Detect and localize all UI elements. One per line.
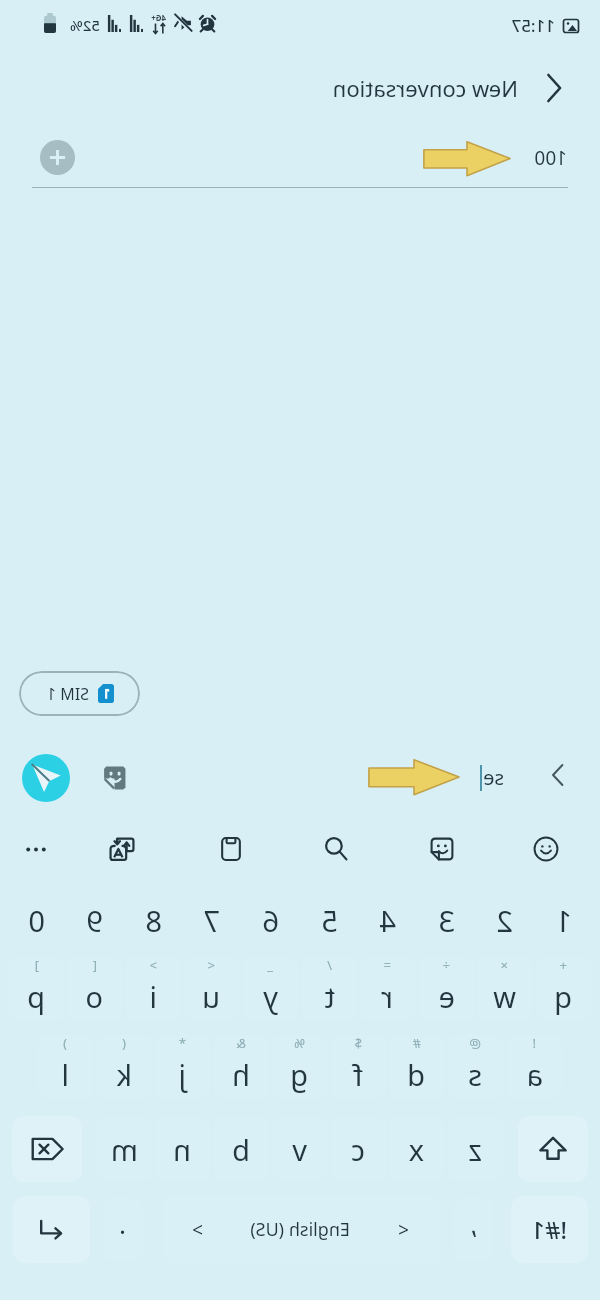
staticText: g	[290, 1055, 308, 1094]
staticText: %	[294, 1035, 305, 1052]
button[interactable]: Translate	[98, 825, 146, 873]
button[interactable]: x	[389, 1117, 444, 1181]
button[interactable]: ×	[477, 957, 532, 1021]
staticText: 1	[555, 901, 572, 940]
button[interactable]: 7	[182, 889, 241, 951]
staticText: k	[116, 1055, 132, 1094]
staticText: ,	[470, 1206, 477, 1241]
button[interactable]: v	[272, 1117, 327, 1181]
staticText: f	[353, 1055, 363, 1094]
staticText: 4	[379, 901, 396, 940]
button[interactable]: Space	[162, 1196, 439, 1263]
button[interactable]: b	[214, 1117, 269, 1181]
button[interactable]: ,	[454, 1198, 494, 1261]
staticText: q	[554, 977, 572, 1016]
staticText: o	[85, 977, 103, 1016]
button[interactable]: Search	[312, 825, 360, 873]
button[interactable]: 4	[358, 889, 417, 951]
staticText: 2	[496, 901, 513, 940]
button[interactable]: +	[536, 957, 591, 1021]
button[interactable]: More options	[12, 825, 60, 873]
button[interactable]: 9	[65, 889, 124, 951]
button[interactable]: Enter	[13, 1196, 90, 1263]
button[interactable]: 2	[475, 889, 534, 951]
staticText: English (US)	[250, 1217, 350, 1242]
staticText: !	[532, 1035, 536, 1052]
button[interactable]: (	[97, 1035, 152, 1099]
staticText: v	[292, 1130, 307, 1169]
button[interactable]: 6	[241, 889, 300, 951]
button[interactable]: Stickers	[418, 825, 466, 873]
button[interactable]: _	[243, 957, 298, 1021]
staticText: ÷	[442, 957, 450, 974]
button[interactable]: 1	[534, 889, 593, 951]
staticText: 5	[321, 901, 338, 940]
staticText: i	[149, 977, 157, 1016]
button[interactable]: *	[155, 1035, 210, 1099]
staticText: .	[119, 1206, 126, 1241]
button[interactable]: c	[331, 1117, 386, 1181]
staticText: @	[469, 1035, 481, 1052]
staticText: (	[122, 1035, 126, 1052]
button[interactable]: $	[331, 1035, 386, 1099]
button[interactable]: %	[272, 1035, 327, 1099]
staticText: x	[408, 1130, 424, 1169]
button[interactable]: Expand	[540, 756, 578, 794]
button[interactable]: SIM 1	[19, 671, 140, 716]
button[interactable]: Emoji	[522, 825, 570, 873]
button[interactable]: Clipboard	[207, 825, 255, 873]
staticText: 11:57	[511, 14, 555, 37]
button[interactable]: Shift	[518, 1116, 588, 1182]
button[interactable]: #	[389, 1035, 444, 1099]
button[interactable]: 0	[7, 889, 66, 951]
button[interactable]: &	[214, 1035, 269, 1099]
staticText: =	[383, 957, 391, 974]
staticText: 9	[86, 901, 103, 940]
staticText: <	[398, 1217, 409, 1243]
staticText: e	[438, 977, 455, 1016]
button[interactable]: [	[67, 957, 122, 1021]
button[interactable]: >	[126, 957, 181, 1021]
staticText: 8	[145, 901, 162, 940]
staticText: se	[483, 764, 504, 791]
staticText: )	[63, 1035, 67, 1052]
button[interactable]: 5	[300, 889, 359, 951]
button[interactable]: )	[38, 1035, 93, 1099]
button[interactable]: /	[302, 957, 357, 1021]
staticText: 52%	[70, 15, 100, 35]
staticText: a	[526, 1055, 543, 1094]
staticText: New conversation	[332, 73, 518, 103]
button[interactable]: 3	[417, 889, 476, 951]
staticText: y	[263, 977, 278, 1016]
button[interactable]: Backspace	[12, 1116, 82, 1182]
button[interactable]: =	[360, 957, 415, 1021]
button[interactable]: n	[155, 1117, 210, 1181]
staticText: 3	[438, 901, 455, 940]
staticText: 6	[262, 901, 279, 940]
button[interactable]: @	[448, 1035, 503, 1099]
button[interactable]: m	[97, 1117, 152, 1181]
staticText: w	[493, 977, 516, 1016]
button[interactable]: !	[507, 1035, 562, 1099]
button[interactable]: ]	[9, 957, 64, 1021]
button[interactable]: Symbols	[511, 1196, 588, 1263]
button[interactable]: Send	[22, 754, 70, 802]
button[interactable]: 8	[124, 889, 183, 951]
staticText: SIM 1	[46, 683, 89, 705]
staticText: +	[559, 957, 567, 974]
button[interactable]: Stickers	[94, 758, 134, 798]
staticText: m	[110, 1130, 138, 1169]
button[interactable]: Add recipient	[40, 140, 75, 175]
button[interactable]: 100	[490, 132, 580, 184]
staticText: #	[412, 1035, 421, 1052]
staticText: 0	[28, 901, 45, 940]
staticText: z	[468, 1130, 482, 1169]
button[interactable]: Back	[534, 68, 574, 108]
staticText: t	[324, 977, 335, 1016]
staticText: p	[27, 977, 45, 1016]
button[interactable]: <	[184, 957, 239, 1021]
staticText: 7	[203, 901, 220, 940]
button[interactable]: .	[103, 1198, 143, 1261]
button[interactable]: ÷	[419, 957, 474, 1021]
button[interactable]: z	[448, 1117, 503, 1181]
